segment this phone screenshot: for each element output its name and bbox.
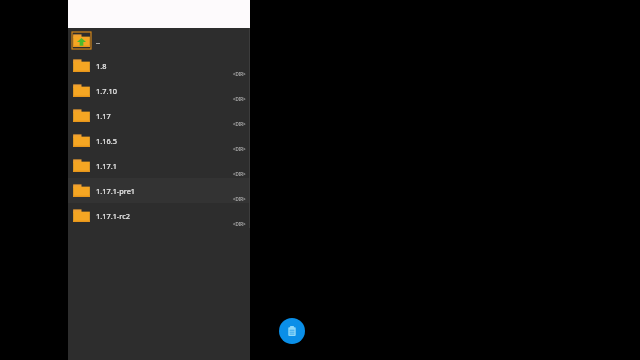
staticText: <DIR> [233, 171, 246, 177]
button[interactable]: Paste [279, 318, 305, 344]
staticText: 1.8 [96, 61, 107, 71]
button[interactable]: 1.17 [68, 103, 250, 128]
staticText: <DIR> [233, 221, 246, 227]
staticText: <DIR> [233, 71, 246, 77]
button[interactable]: 1.8 [68, 53, 250, 78]
staticText: <DIR> [233, 121, 246, 127]
staticText: 1.16.5 [96, 136, 117, 146]
staticText: <DIR> [233, 146, 246, 152]
button[interactable]: 1.16.5 [68, 128, 250, 153]
button[interactable]: 1.17.1-pre1 [68, 178, 250, 203]
button[interactable]: 1.17.1 [68, 153, 250, 178]
staticText: 1.7.10 [96, 86, 117, 96]
button[interactable]: .. [68, 28, 250, 53]
button[interactable]: 1.7.10 [68, 78, 250, 103]
staticText: 1.17.1 [96, 161, 117, 171]
staticText: <DIR> [233, 96, 246, 102]
button[interactable]: 1.17.1-rc2 [68, 203, 250, 228]
staticText: 1.17.1-rc2 [96, 211, 130, 221]
staticText: 1.17.1-pre1 [96, 186, 136, 196]
staticText: 1.17 [96, 111, 111, 121]
staticText: .. [96, 36, 100, 46]
staticText: <DIR> [233, 196, 246, 202]
